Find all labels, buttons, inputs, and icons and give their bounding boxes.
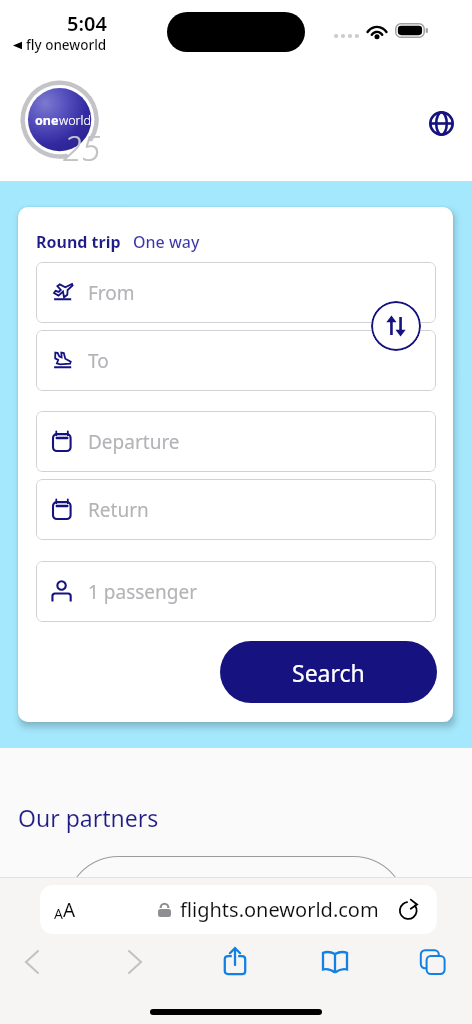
button[interactable]: Tabs	[410, 939, 456, 985]
button[interactable]: Departure	[36, 411, 436, 472]
button[interactable]: Forward	[112, 939, 158, 985]
button[interactable]: Back	[9, 939, 55, 985]
button[interactable]: Bookmarks	[312, 939, 358, 985]
button[interactable]: One way	[133, 231, 200, 253]
staticText: Our partners	[18, 802, 159, 833]
button[interactable]: Select language	[423, 105, 459, 141]
button[interactable]: From	[36, 262, 436, 323]
button[interactable]: Share	[212, 939, 258, 985]
staticText: Round trip	[36, 231, 121, 253]
staticText: 5:04	[67, 10, 107, 37]
staticText: one	[35, 112, 59, 129]
button[interactable]: Return	[36, 479, 436, 540]
button[interactable]: Swap origin and destination	[371, 301, 421, 351]
staticText: A	[63, 897, 76, 923]
staticText: A	[54, 904, 63, 923]
button[interactable]: Search	[220, 641, 437, 703]
staticText: Return	[88, 497, 149, 523]
staticText: Search	[292, 657, 365, 688]
staticText: fly oneworld	[26, 36, 107, 54]
staticText: From	[88, 280, 135, 306]
staticText: 25	[63, 125, 101, 171]
button[interactable]: To	[36, 330, 436, 391]
staticText: world	[59, 112, 91, 129]
button[interactable]: A	[40, 885, 437, 934]
staticText: To	[88, 348, 109, 374]
staticText: 1 passenger	[88, 579, 198, 605]
button[interactable]: 1 passenger	[36, 561, 436, 622]
staticText: flights.oneworld.com	[180, 896, 379, 923]
staticText: One way	[133, 231, 200, 253]
staticText: Departure	[88, 429, 180, 455]
button[interactable]: Round trip	[36, 231, 121, 253]
